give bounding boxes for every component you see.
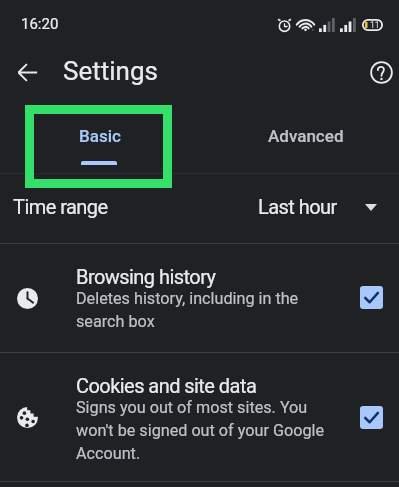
button[interactable]: Browsing history <box>0 244 399 352</box>
staticText: Last hour <box>258 195 337 218</box>
staticText: Deletes history, including in the search… <box>76 289 344 331</box>
button[interactable]: Back <box>9 54 45 90</box>
button[interactable]: Basic <box>0 103 199 173</box>
staticText: Browsing history <box>76 265 216 288</box>
button[interactable]: Cookies and site data, checked <box>360 406 383 429</box>
staticText: Cookies and site data <box>76 374 257 397</box>
button[interactable]: Help <box>363 54 399 90</box>
staticText: 16:20 <box>21 15 59 33</box>
button[interactable]: Advanced <box>199 103 399 173</box>
staticText: Settings <box>63 56 158 86</box>
staticText: Basic <box>79 126 121 146</box>
button[interactable]: Time range <box>0 174 399 243</box>
staticText: 11 <box>370 20 380 30</box>
staticText: Signs you out of most sites. You won't b… <box>76 398 348 463</box>
button[interactable]: Browsing history, checked <box>360 286 383 309</box>
staticText: Time range <box>13 195 108 218</box>
button[interactable]: Cookies and site data <box>0 353 399 481</box>
staticText: Advanced <box>268 126 344 146</box>
